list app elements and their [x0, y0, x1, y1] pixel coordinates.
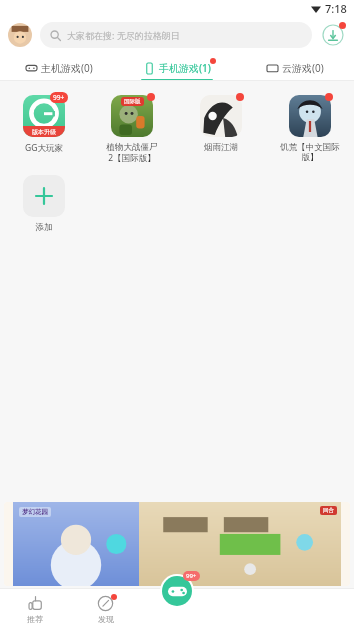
staticText: 7:18 — [325, 1, 347, 16]
button[interactable]: 饥荒【中文国际 版】 — [265, 89, 354, 169]
button[interactable]: 添加 — [0, 169, 88, 239]
staticText: 99+ — [53, 93, 65, 102]
staticText: 主机游戏(0) — [41, 61, 93, 75]
button[interactable]: Downloads — [320, 22, 346, 48]
staticText: 手机游戏(1) — [159, 61, 211, 75]
staticText: 大家都在搜: 无尽的拉格朗日 — [67, 29, 180, 41]
button[interactable]: Games — [162, 576, 192, 606]
staticText: 推荐 — [27, 614, 43, 624]
staticText: 植物大战僵尸 2【国际版】 — [102, 142, 162, 163]
button[interactable]: 手机游戏(1) — [118, 54, 236, 81]
staticText: 烟雨江湖 — [191, 142, 251, 153]
button[interactable]: 烟雨江湖 — [176, 89, 265, 159]
button[interactable]: 版本升级 — [0, 89, 88, 160]
staticText: 国际版 — [124, 98, 141, 105]
button[interactable]: 发现 — [70, 588, 141, 631]
staticText: 梦幻花园 — [22, 508, 48, 516]
button[interactable]: 推荐 — [0, 588, 70, 631]
staticText: 回合 — [323, 507, 334, 514]
button[interactable]: 国际版 — [88, 89, 176, 169]
button[interactable]: 大家都在搜: 无尽的拉格朗日 — [40, 22, 312, 48]
staticText: 添加 — [14, 222, 74, 233]
button[interactable]: 主机游戏(0) — [0, 54, 118, 81]
staticText: 饥荒【中文国际 版】 — [280, 142, 340, 163]
staticText: 发现 — [98, 614, 114, 624]
staticText: 99+ — [186, 572, 197, 580]
staticText: GG大玩家 — [14, 142, 74, 154]
staticText: 云游戏(0) — [282, 61, 324, 75]
button[interactable]: 云游戏(0) — [236, 54, 354, 81]
button[interactable]: 梦幻花园 — [4, 502, 350, 586]
button[interactable]: Profile — [8, 23, 32, 47]
staticText: 版本升级 — [32, 128, 56, 136]
